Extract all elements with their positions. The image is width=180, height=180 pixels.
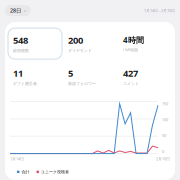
staticText: 5 xyxy=(68,67,73,79)
staticText: 100 xyxy=(162,117,168,122)
button[interactable]: 11 xyxy=(8,61,62,92)
button[interactable]: 4時間 xyxy=(118,28,172,59)
staticText: 2月10日 xyxy=(156,156,170,161)
staticText: 11 xyxy=(13,67,23,79)
button[interactable]: 28日 xyxy=(5,5,31,16)
staticText: ユニーク視聴者 xyxy=(41,169,69,174)
staticText: v xyxy=(24,8,26,13)
button[interactable]: 427 xyxy=(118,61,172,92)
staticText: 総視聴数 xyxy=(13,48,29,53)
staticText: 1月14日 - 2月10日 xyxy=(144,8,175,13)
staticText: 150 xyxy=(162,101,168,106)
staticText: 548 xyxy=(13,34,28,46)
button[interactable]: 548 xyxy=(8,28,62,59)
staticText: ダイヤモンド xyxy=(68,48,92,53)
staticText: 新規フォロワー xyxy=(68,81,96,86)
button[interactable]: 200 xyxy=(63,28,117,59)
staticText: 427 xyxy=(123,67,138,79)
staticText: 合計 xyxy=(21,169,29,174)
staticText: 50 xyxy=(162,133,166,138)
button[interactable]: 5 xyxy=(63,61,117,92)
staticText: 28日 xyxy=(10,7,21,14)
staticText: 4時間 xyxy=(123,35,144,45)
staticText: 1月14日 xyxy=(10,156,24,161)
staticText: 0 xyxy=(162,149,164,154)
staticText: コメント xyxy=(123,81,139,86)
staticText: 200 xyxy=(68,34,83,46)
staticText: ギフト贈呈者 xyxy=(13,81,37,86)
staticText: LIVE時間 xyxy=(123,47,138,52)
